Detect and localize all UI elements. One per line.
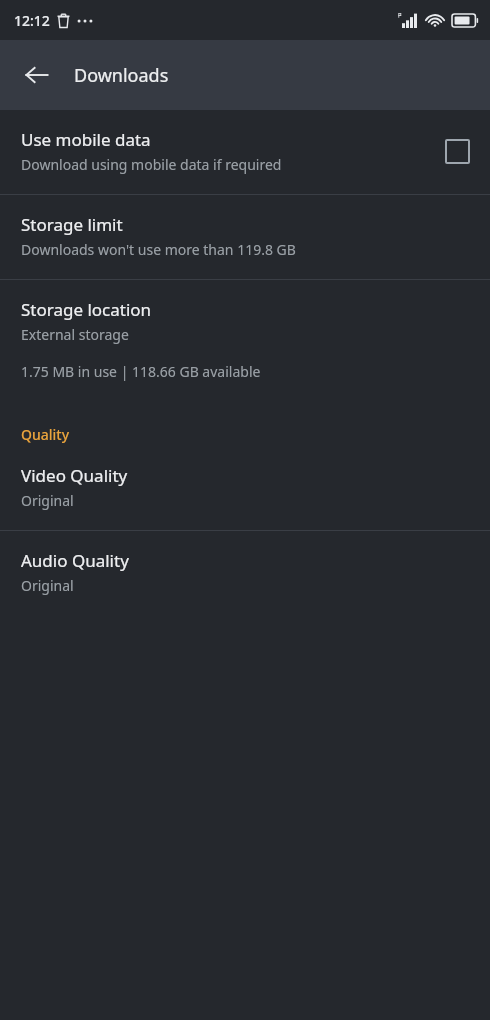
staticText: 12:12: [14, 11, 50, 30]
button[interactable]: Back: [10, 48, 64, 102]
button[interactable]: Storage limit: [0, 195, 490, 279]
button[interactable]: Use mobile data checkbox: [442, 136, 472, 166]
staticText: Download using mobile data if required: [21, 155, 282, 174]
staticText: Video Quality: [21, 464, 128, 487]
staticText: Downloads won't use more than 119.8 GB: [21, 240, 296, 259]
staticText: Original: [21, 576, 74, 595]
staticText: Original: [21, 491, 74, 510]
staticText: Downloads: [74, 63, 169, 88]
staticText: External storage: [21, 325, 129, 344]
staticText: Storage limit: [21, 213, 123, 236]
staticText: Storage location: [21, 298, 152, 321]
staticText: Use mobile data: [21, 128, 151, 151]
button[interactable]: Storage location: [0, 280, 490, 403]
button[interactable]: Video Quality: [0, 454, 490, 530]
button[interactable]: Use mobile data: [0, 110, 490, 194]
staticText: Quality: [21, 425, 70, 444]
staticText: 1.75 MB in use | 118.66 GB available: [21, 362, 261, 381]
button[interactable]: Audio Quality: [0, 531, 490, 615]
staticText: Audio Quality: [21, 549, 129, 572]
